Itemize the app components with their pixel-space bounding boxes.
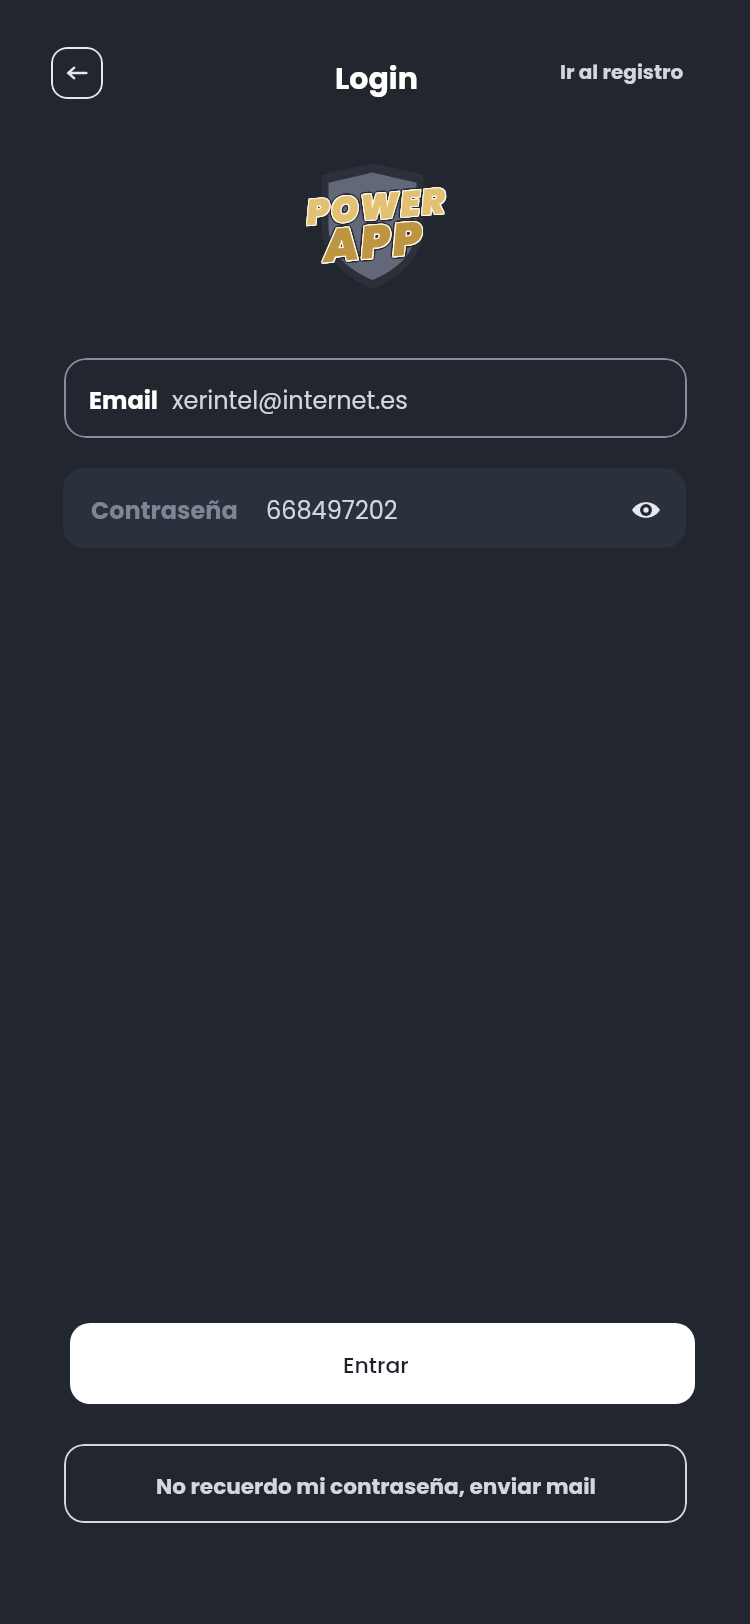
staticText: POWER <box>302 176 447 238</box>
staticText: APP <box>318 204 424 276</box>
staticText: APP <box>322 204 428 276</box>
staticText: xerintel@internet.es <box>172 384 408 418</box>
staticText: POWER <box>302 174 447 236</box>
staticText: APP <box>322 204 428 277</box>
staticText: POWER <box>304 174 449 236</box>
staticText: POWER <box>306 175 451 237</box>
staticText: APP <box>317 206 424 279</box>
staticText: POWER <box>303 174 448 236</box>
staticText: APP <box>320 207 427 279</box>
staticText: POWER <box>306 178 451 240</box>
staticText: APP <box>321 205 427 277</box>
staticText: APP <box>320 204 426 276</box>
staticText: APP <box>321 208 427 280</box>
staticText: POWER <box>303 178 448 240</box>
staticText: APP <box>321 207 428 279</box>
staticText: Login <box>335 58 418 100</box>
staticText: POWER <box>304 175 449 237</box>
staticText: POWER <box>304 176 449 238</box>
staticText: APP <box>318 206 425 278</box>
staticText: POWER <box>303 175 448 237</box>
button[interactable]: Email <box>64 358 687 438</box>
staticText: Entrar <box>343 1350 409 1381</box>
button[interactable]: Entrar <box>70 1323 695 1404</box>
staticText: POWER <box>305 174 450 236</box>
staticText: Contraseña <box>91 494 238 528</box>
staticText: APP <box>319 204 425 276</box>
staticText: POWER <box>302 178 447 240</box>
staticText: Ir al registro <box>560 58 684 86</box>
staticText: POWER <box>302 177 447 239</box>
staticText: POWER <box>302 175 447 237</box>
staticText: 668497202 <box>266 494 398 528</box>
staticText: APP <box>319 208 425 280</box>
staticText: APP <box>323 205 430 278</box>
staticText: POWER <box>305 177 450 239</box>
staticText: POWER <box>304 177 449 239</box>
staticText: POWER <box>305 175 450 237</box>
staticText: APP <box>320 203 426 275</box>
button[interactable]: Ir al registro <box>560 58 684 86</box>
staticText: APP <box>322 206 429 279</box>
staticText: APP <box>318 207 425 279</box>
staticText: POWER <box>304 176 449 238</box>
staticText: APP <box>323 207 429 280</box>
staticText: APP <box>320 205 426 277</box>
staticText: POWER <box>306 174 451 236</box>
staticText: POWER <box>307 176 452 238</box>
staticText: POWER <box>301 176 446 238</box>
button[interactable]: Contraseña <box>63 468 686 548</box>
staticText: APP <box>320 206 427 278</box>
staticText: APP <box>322 205 429 278</box>
button[interactable]: No recuerdo mi contraseña, enviar mail <box>64 1444 687 1523</box>
staticText: POWER <box>304 173 449 235</box>
staticText: POWER <box>306 177 451 239</box>
staticText: Email <box>89 384 158 418</box>
staticText: APP <box>319 207 426 279</box>
staticText: POWER <box>303 176 448 238</box>
staticText: APP <box>321 204 427 276</box>
staticText: APP <box>321 206 428 278</box>
staticText: POWER <box>305 178 450 240</box>
staticText: POWER <box>305 176 450 238</box>
staticText: POWER <box>304 179 449 241</box>
staticText: APP <box>320 208 426 280</box>
staticText: POWER <box>303 177 448 239</box>
staticText: APP <box>321 209 427 281</box>
staticText: POWER <box>304 178 449 240</box>
staticText: APP <box>322 208 428 280</box>
staticText: No recuerdo mi contraseña, enviar mail <box>156 1471 596 1501</box>
button[interactable]: Show password <box>624 488 668 532</box>
staticText: APP <box>318 205 424 277</box>
staticText: APP <box>319 206 426 278</box>
staticText: APP <box>320 206 427 278</box>
button[interactable]: Back <box>51 47 103 99</box>
staticText: POWER <box>306 176 451 238</box>
staticText: APP <box>319 205 425 277</box>
